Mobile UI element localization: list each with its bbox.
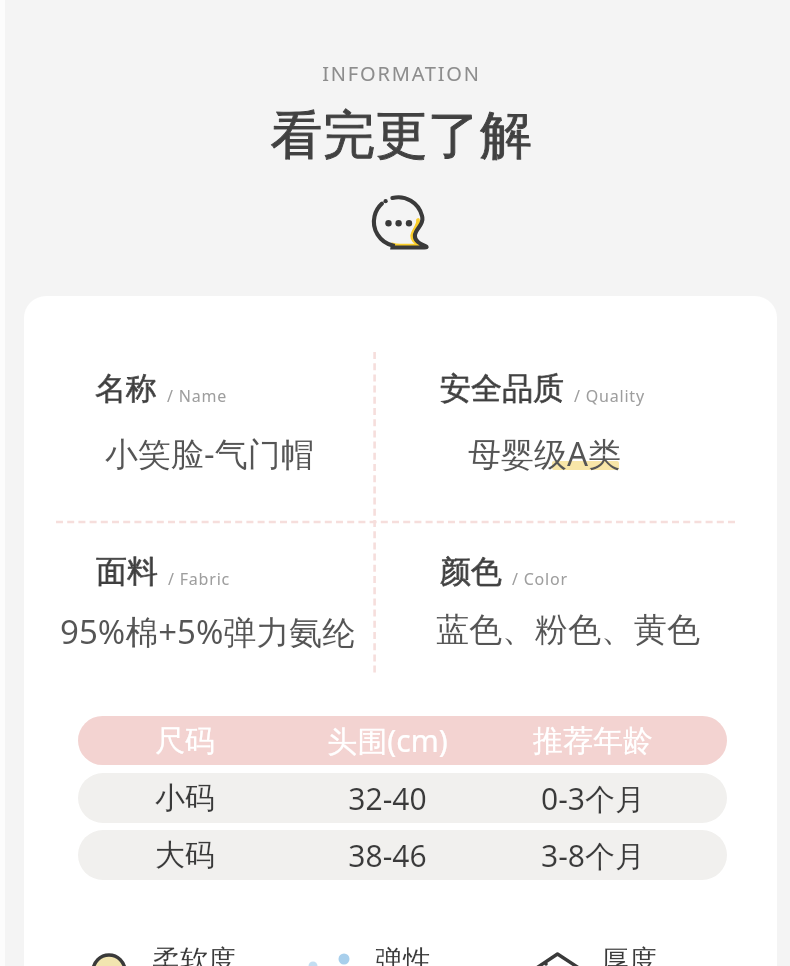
staticText: 大码 — [155, 836, 215, 874]
button[interactable]: 小码 — [78, 773, 727, 823]
staticText: 安全品质 — [440, 369, 564, 408]
staticText: 弹性 — [375, 943, 431, 966]
staticText: 小笑脸-气门帽 — [105, 431, 314, 476]
staticText: 柔软度 — [152, 943, 236, 966]
staticText: INFORMATION — [13, 60, 790, 87]
staticText: 头围(cm) — [327, 720, 448, 761]
staticText: 母婴级A类 — [468, 431, 622, 476]
staticText: / Quality — [574, 385, 645, 407]
staticText: / Color — [512, 568, 568, 590]
button[interactable]: 弹性 — [375, 943, 431, 966]
staticText: 蓝色、粉色、黄色 — [436, 609, 700, 651]
staticText: 颜色 — [440, 552, 502, 591]
staticText: 看完更了解 — [13, 103, 790, 169]
staticText: 面料 — [96, 552, 158, 591]
staticText: / Name — [167, 385, 228, 407]
staticText: 尺码 — [155, 722, 215, 760]
button[interactable]: 尺码 — [78, 716, 727, 765]
button[interactable]: 大码 — [78, 830, 727, 880]
staticText: 安全品质 — [440, 369, 564, 408]
staticText: 0-3个月 — [541, 778, 645, 819]
staticText: 看完更了解 — [13, 103, 790, 169]
staticText: 95%棉+5%弹力氨纶 — [60, 609, 356, 654]
staticText: 名称 — [95, 369, 157, 408]
staticText: 32-40 — [348, 778, 427, 819]
staticText: 厚度 — [601, 943, 657, 966]
staticText: 3-8个月 — [541, 835, 645, 876]
staticText: / Fabric — [168, 568, 231, 590]
button[interactable]: 柔软度 — [152, 943, 236, 966]
staticText: 名称 — [95, 369, 157, 408]
staticText: 推荐年龄 — [533, 722, 653, 760]
button[interactable]: Chat — [367, 192, 433, 258]
staticText: 面料 — [96, 552, 158, 591]
button[interactable]: 厚度 — [601, 943, 657, 966]
staticText: 颜色 — [440, 552, 502, 591]
staticText: 38-46 — [348, 835, 427, 876]
staticText: 小码 — [155, 779, 215, 817]
